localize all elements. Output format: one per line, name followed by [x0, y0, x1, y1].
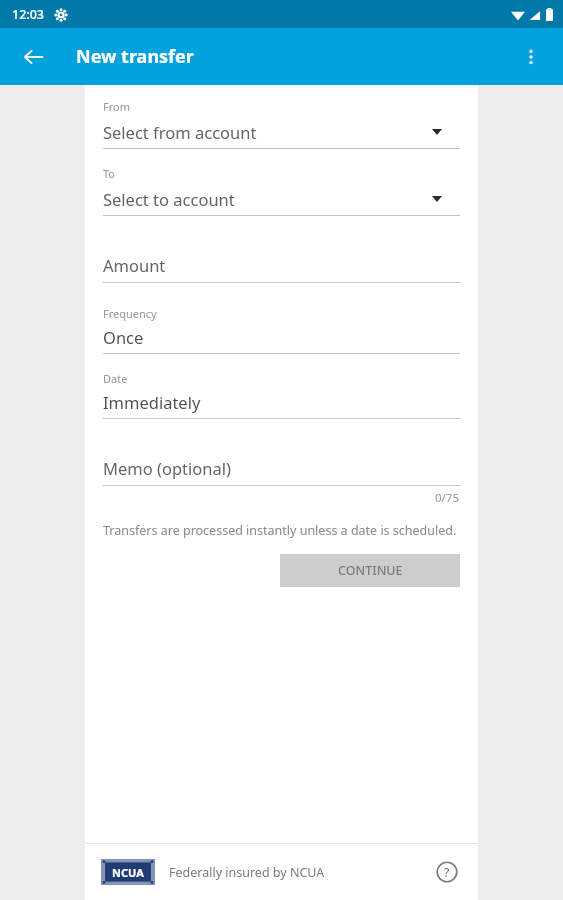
button[interactable]: Back	[12, 35, 56, 79]
staticText: New transfer	[76, 44, 194, 69]
staticText: 12:03	[12, 6, 45, 23]
staticText: Select from account	[103, 121, 257, 143]
staticText: Amount	[103, 254, 166, 276]
button[interactable]: Amount	[103, 254, 460, 283]
button[interactable]: From	[103, 99, 460, 149]
button[interactable]: Frequency	[103, 306, 460, 354]
button[interactable]: Memo (optional)	[103, 457, 460, 486]
button[interactable]: Date	[103, 371, 460, 419]
staticText: Federally insured by NCUA	[169, 864, 325, 881]
staticText: CONTINUE	[338, 562, 403, 579]
button[interactable]: CONTINUE	[280, 554, 460, 587]
button[interactable]: To	[103, 166, 460, 216]
staticText: Transfers are processed instantly unless…	[103, 522, 457, 539]
staticText: Select to account	[103, 188, 235, 210]
staticText: Once	[103, 326, 144, 348]
staticText: ?	[444, 864, 450, 880]
staticText: From	[103, 99, 130, 114]
button[interactable]: Help	[430, 855, 464, 889]
button[interactable]: More options	[509, 35, 553, 79]
staticText: NCUA	[112, 865, 144, 880]
staticText: Date	[103, 371, 128, 386]
staticText: Memo (optional)	[103, 457, 231, 479]
staticText: 0/75	[435, 490, 460, 506]
staticText: Frequency	[103, 306, 157, 321]
staticText: To	[103, 166, 116, 181]
staticText: Immediately	[103, 391, 201, 413]
